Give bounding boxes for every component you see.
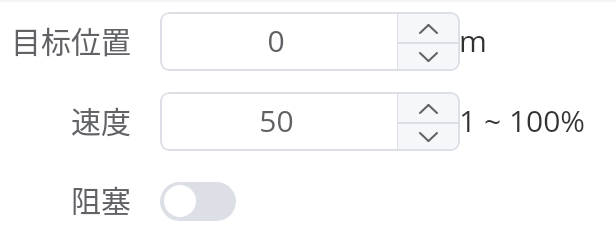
button[interactable]: Increase [398,92,460,122]
button[interactable]: Increase [398,12,460,42]
staticText: 0 [267,20,285,61]
staticText: 1 ~ 100% [459,100,586,141]
button[interactable]: 阻塞 switch [160,182,236,221]
button[interactable]: Decrease [398,44,460,71]
staticText: m [459,20,487,61]
button[interactable]: 0 [160,12,460,71]
staticText: 阻塞 [71,177,131,215]
button[interactable]: 50 [160,92,460,151]
button[interactable]: Decrease [398,124,460,151]
staticText: 目标位置 [11,18,131,61]
staticText: 50 [259,100,294,141]
staticText: 速度 [71,98,131,141]
